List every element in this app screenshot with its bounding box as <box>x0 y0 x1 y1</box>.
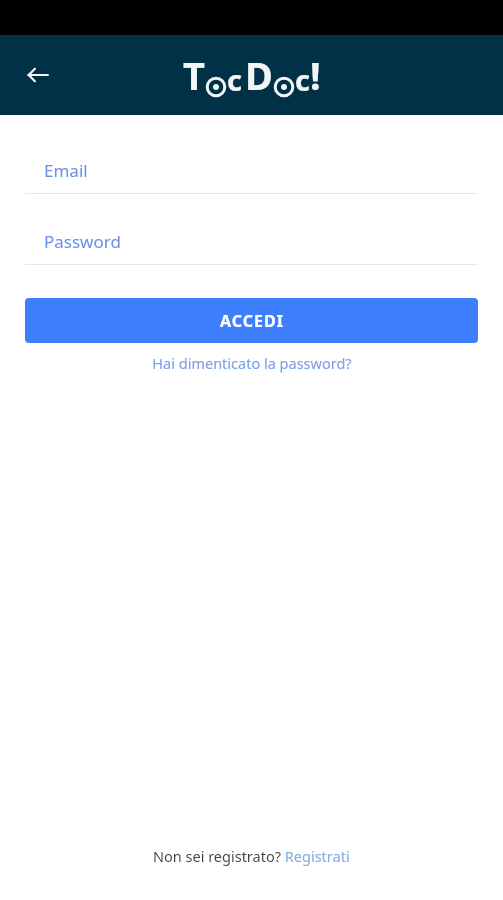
staticText: Password <box>44 230 121 253</box>
staticText: c <box>295 60 310 99</box>
staticText: Non sei registrato? Registrati <box>153 846 350 866</box>
staticText: ! <box>310 49 321 101</box>
staticText: Email <box>44 159 88 182</box>
button[interactable]: Email <box>0 155 503 194</box>
staticText: Hai dimenticato la password? <box>152 353 352 373</box>
button[interactable]: ACCEDI <box>25 298 478 343</box>
staticText: ACCEDI <box>220 310 284 332</box>
button[interactable]: Non sei registrato? Registrati <box>153 846 350 866</box>
button[interactable]: Hai dimenticato la password? <box>0 353 503 373</box>
staticText: c <box>227 60 242 99</box>
button[interactable]: Back <box>14 51 62 99</box>
staticText: D <box>245 49 273 101</box>
button[interactable]: Password <box>0 226 503 265</box>
staticText: T <box>183 49 205 101</box>
